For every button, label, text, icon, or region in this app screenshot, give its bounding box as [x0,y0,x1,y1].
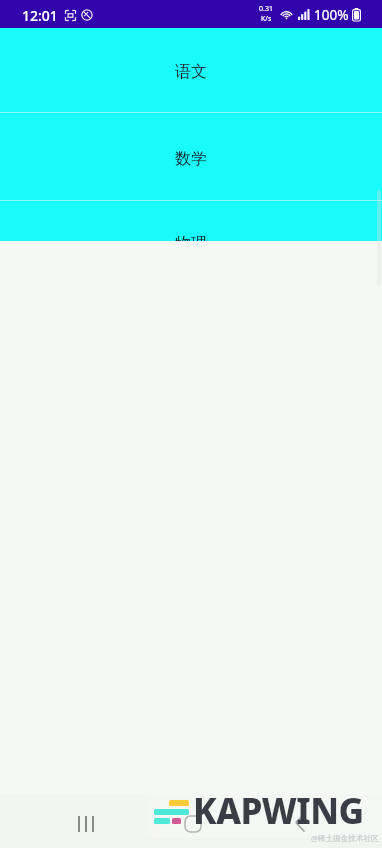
button[interactable]: 物理 [0,198,382,241]
staticText: KAPWING [193,787,364,835]
button[interactable]: 数学 [0,113,382,200]
button[interactable]: 语文 [0,28,382,112]
staticText: K/s [261,14,272,24]
button[interactable]: Back [284,806,316,838]
staticText: 语文 [175,62,207,82]
staticText: 物理 [175,234,207,241]
staticText: 数学 [175,149,207,169]
staticText: 100% [314,6,349,24]
staticText: @稀土掘金技术社区 [311,833,379,843]
button[interactable]: Recents [70,808,102,840]
staticText: 0.31 [259,4,273,14]
staticText: 12:01 [22,6,58,25]
button[interactable]: Home [177,808,209,840]
